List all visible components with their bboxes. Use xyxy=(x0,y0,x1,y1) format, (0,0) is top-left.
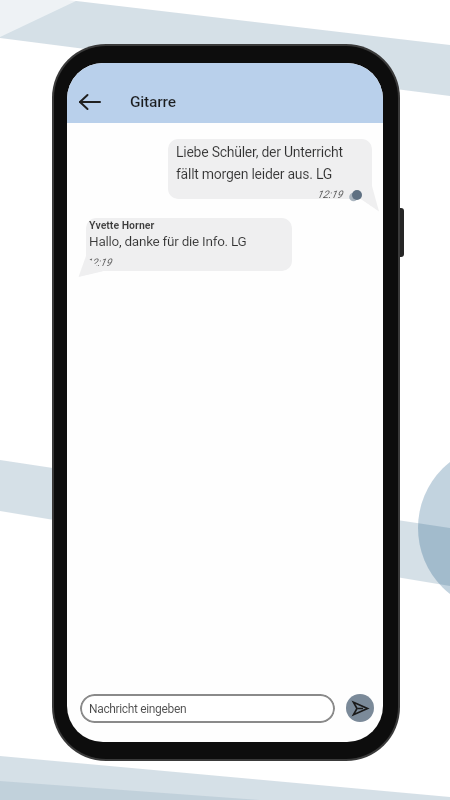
staticText: 12:19 xyxy=(86,256,112,268)
staticText: Yvette Horner xyxy=(89,219,155,231)
staticText: Gitarre xyxy=(130,93,176,111)
staticText: Nachricht eingeben xyxy=(89,702,187,716)
staticText: Liebe Schüler, der Unterricht fällt morg… xyxy=(176,144,343,183)
staticText: Hallo, danke für die Info. LG xyxy=(89,233,247,249)
staticText: 12:19 xyxy=(317,188,343,200)
